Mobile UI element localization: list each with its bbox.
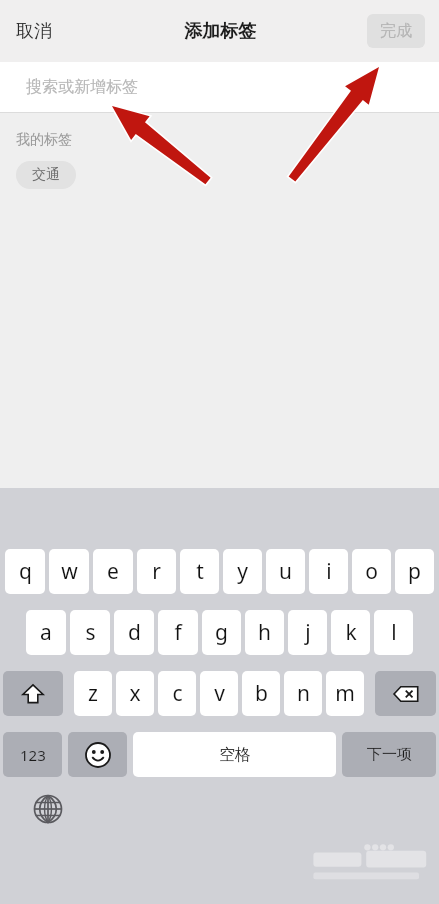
button[interactable]: 空格 bbox=[133, 732, 336, 777]
button[interactable]: 123 bbox=[3, 732, 62, 777]
staticText: i bbox=[326, 557, 332, 586]
staticText: d bbox=[128, 618, 141, 647]
staticText: x bbox=[129, 679, 141, 708]
staticText: j bbox=[305, 618, 311, 647]
button[interactable]: f bbox=[158, 610, 198, 655]
button[interactable]: Emoji bbox=[68, 732, 127, 777]
staticText: u bbox=[279, 557, 292, 586]
button[interactable]: d bbox=[114, 610, 154, 655]
button[interactable]: r bbox=[137, 549, 176, 594]
button[interactable]: i bbox=[309, 549, 348, 594]
staticText: k bbox=[345, 618, 357, 647]
staticText: b bbox=[255, 679, 268, 708]
button[interactable]: o bbox=[352, 549, 391, 594]
staticText: m bbox=[335, 679, 355, 708]
button[interactable]: j bbox=[288, 610, 327, 655]
button[interactable]: s bbox=[70, 610, 110, 655]
staticText: s bbox=[85, 618, 96, 647]
button[interactable]: y bbox=[223, 549, 262, 594]
button[interactable]: h bbox=[245, 610, 284, 655]
button[interactable]: g bbox=[202, 610, 241, 655]
staticText: e bbox=[107, 557, 119, 586]
button[interactable]: b bbox=[242, 671, 280, 716]
button[interactable]: p bbox=[395, 549, 434, 594]
button[interactable]: c bbox=[158, 671, 196, 716]
staticText: 取消 bbox=[16, 20, 52, 43]
staticText: 我的标签 bbox=[16, 131, 72, 149]
button[interactable]: q bbox=[5, 549, 45, 594]
staticText: 完成 bbox=[380, 21, 412, 41]
staticText: 123 bbox=[20, 745, 46, 765]
button[interactable]: 完成 bbox=[367, 14, 425, 48]
button[interactable]: a bbox=[26, 610, 66, 655]
staticText: z bbox=[88, 679, 98, 708]
button[interactable]: Backspace bbox=[375, 671, 436, 716]
staticText: o bbox=[365, 557, 378, 586]
staticText: a bbox=[40, 618, 52, 647]
staticText: t bbox=[196, 557, 204, 586]
button[interactable]: u bbox=[266, 549, 305, 594]
staticText: 空格 bbox=[219, 745, 251, 765]
staticText: r bbox=[152, 557, 161, 586]
staticText: p bbox=[408, 557, 421, 586]
button[interactable]: Shift bbox=[3, 671, 63, 716]
staticText: 搜索或新增标签 bbox=[26, 77, 138, 97]
button[interactable]: t bbox=[180, 549, 219, 594]
button[interactable]: e bbox=[93, 549, 133, 594]
button[interactable]: k bbox=[331, 610, 370, 655]
staticText: q bbox=[19, 557, 32, 586]
button[interactable]: n bbox=[284, 671, 322, 716]
staticText: l bbox=[391, 618, 397, 647]
staticText: 交通 bbox=[32, 166, 60, 184]
staticText: c bbox=[172, 679, 183, 708]
staticText: w bbox=[61, 557, 78, 586]
button[interactable]: Switch language bbox=[32, 793, 64, 825]
staticText: h bbox=[258, 618, 271, 647]
button[interactable]: x bbox=[116, 671, 154, 716]
staticText: f bbox=[174, 618, 182, 647]
staticText: n bbox=[297, 679, 310, 708]
staticText: v bbox=[214, 679, 225, 708]
button[interactable]: 下一项 bbox=[342, 732, 436, 777]
button[interactable]: 取消 bbox=[8, 12, 60, 51]
button[interactable]: 交通 bbox=[16, 161, 76, 189]
button[interactable]: l bbox=[374, 610, 413, 655]
button[interactable]: 搜索或新增标签 bbox=[0, 62, 439, 112]
button[interactable]: v bbox=[200, 671, 238, 716]
button[interactable]: w bbox=[49, 549, 89, 594]
staticText: 下一项 bbox=[367, 745, 412, 764]
button[interactable]: z bbox=[74, 671, 112, 716]
button[interactable]: m bbox=[326, 671, 364, 716]
staticText: g bbox=[215, 618, 228, 647]
staticText: y bbox=[237, 557, 248, 586]
staticText: 添加标签 bbox=[184, 20, 256, 43]
